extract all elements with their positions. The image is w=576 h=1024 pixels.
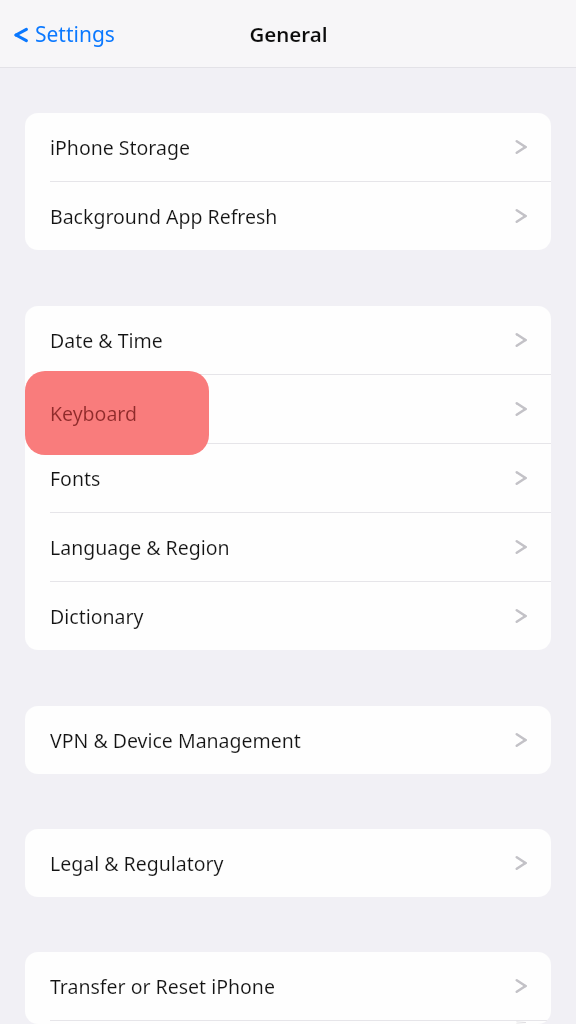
button[interactable]: Language & Region — [25, 513, 551, 581]
button[interactable]: Background App Refresh — [25, 182, 551, 250]
staticText: VPN & Device Management — [50, 727, 511, 754]
staticText: Background App Refresh — [50, 203, 511, 230]
button[interactable]: Dictionary — [25, 582, 551, 650]
staticText: Dictionary — [50, 603, 511, 630]
button[interactable]: Fonts — [25, 444, 551, 512]
staticText: Date & Time — [50, 327, 511, 354]
staticText: Legal & Regulatory — [50, 850, 511, 877]
button[interactable]: Legal & Regulatory — [25, 829, 551, 897]
staticText: Transfer or Reset iPhone — [50, 973, 511, 1000]
button[interactable]: Settings — [0, 16, 125, 53]
button[interactable]: Keyboard — [25, 371, 209, 455]
staticText: General — [249, 20, 328, 48]
staticText: Keyboard — [50, 400, 138, 427]
staticText: Language & Region — [50, 534, 511, 561]
button[interactable]: iPhone Storage — [25, 113, 551, 181]
staticText: Fonts — [50, 465, 511, 492]
button[interactable]: Transfer or Reset iPhone — [25, 952, 551, 1020]
staticText: Settings — [35, 20, 115, 49]
staticText: iPhone Storage — [50, 134, 511, 161]
button[interactable]: Shut Down — [25, 1021, 551, 1024]
button[interactable]: Date & Time — [25, 306, 551, 374]
button[interactable]: VPN & Device Management — [25, 706, 551, 774]
